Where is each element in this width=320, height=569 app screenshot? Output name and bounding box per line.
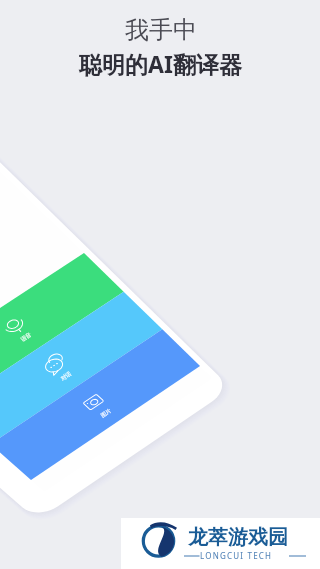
staticText: 对话 [59,370,73,383]
button[interactable]: 龙萃游戏园 LONGCUI TECH [121,518,320,569]
button[interactable]: 语音 [0,307,65,367]
staticText: 我手中 [125,15,197,45]
staticText: 语音 [19,331,33,344]
button[interactable]: 对话 [27,345,105,406]
button[interactable]: 图片 [67,382,145,444]
staticText: 聪明的AI翻译器 [79,48,242,79]
staticText: 龙萃游戏园 [188,525,288,550]
staticText: LONGCUI TECH [200,550,273,561]
staticText: 图片 [99,407,113,420]
